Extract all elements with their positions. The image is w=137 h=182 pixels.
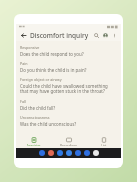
staticText: Recordings — [60, 144, 78, 146]
button[interactable]: Inquiries — [16, 135, 51, 148]
staticText: Pain — [20, 61, 28, 66]
button[interactable]: Fall — [20, 97, 117, 113]
button[interactable]: Unconsciousness — [20, 113, 117, 129]
staticText: Discomfort inquiry — [30, 31, 92, 40]
button[interactable]: More options — [110, 31, 118, 39]
button[interactable]: App 3 — [66, 150, 72, 156]
button[interactable]: App 6 — [93, 150, 99, 156]
button[interactable]: App 2 — [57, 150, 63, 156]
staticText: Responsive — [20, 45, 40, 50]
button[interactable]: App 4 — [75, 150, 81, 156]
staticText: Inquiries — [27, 144, 41, 146]
staticText: Was the child unconscious? — [20, 121, 77, 127]
button[interactable]: Back — [19, 31, 28, 40]
staticText: List — [101, 144, 107, 146]
button[interactable]: List — [86, 135, 121, 148]
button[interactable]: Responsive — [20, 43, 117, 59]
button[interactable]: App 0 — [39, 150, 45, 156]
button[interactable]: Search — [92, 31, 101, 40]
button[interactable]: Account — [101, 31, 110, 40]
staticText: Do you think the child is in pain? — [20, 67, 87, 73]
staticText: Did the child fall? — [20, 105, 56, 111]
staticText: Could the child have swallowed something… — [20, 83, 117, 95]
button[interactable]: App 5 — [84, 150, 90, 156]
staticText: Unconsciousness — [20, 115, 50, 120]
staticText: Does the child respond to you? — [20, 51, 84, 57]
staticText: Fall — [20, 99, 26, 104]
button[interactable]: Foreign object or airway — [20, 75, 117, 97]
button[interactable]: Recordings — [51, 135, 86, 148]
button[interactable]: Pain — [20, 59, 117, 75]
button[interactable]: App 1 — [48, 150, 54, 156]
staticText: Foreign object or airway — [20, 77, 62, 82]
